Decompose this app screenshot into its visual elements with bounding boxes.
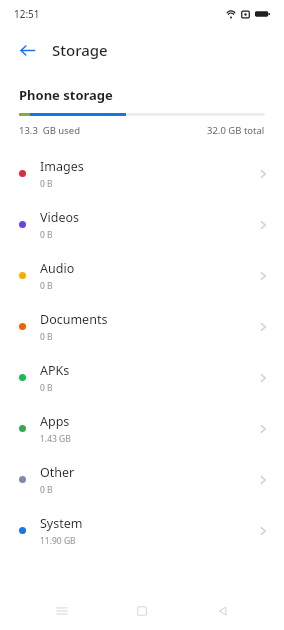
- staticText: 32.0 GB total: [207, 124, 265, 137]
- button[interactable]: Apps: [0, 403, 284, 454]
- staticText: Storage: [52, 40, 108, 60]
- staticText: 0 B: [40, 331, 53, 343]
- staticText: Documents: [40, 311, 108, 328]
- staticText: 0 B: [40, 229, 53, 241]
- staticText: 0 B: [40, 178, 53, 190]
- staticText: System: [40, 515, 83, 532]
- button[interactable]: APKs: [0, 352, 284, 403]
- button[interactable]: Recents: [43, 592, 81, 630]
- staticText: 11.90 GB: [40, 535, 76, 547]
- button[interactable]: Images: [0, 148, 284, 199]
- button[interactable]: Back: [204, 592, 242, 630]
- button[interactable]: Videos: [0, 199, 284, 250]
- staticText: Other: [40, 464, 75, 481]
- staticText: APKs: [40, 362, 70, 379]
- button[interactable]: Home: [123, 592, 161, 630]
- staticText: 0 B: [40, 280, 53, 292]
- staticText: Apps: [40, 413, 70, 430]
- staticText: Audio: [40, 260, 75, 277]
- staticText: 12:51: [14, 7, 40, 21]
- staticText: Phone storage: [19, 86, 113, 104]
- staticText: 1.43 GB: [40, 433, 71, 445]
- button[interactable]: Back: [14, 37, 40, 63]
- staticText: 0 B: [40, 382, 53, 394]
- staticText: 0 B: [40, 484, 53, 496]
- staticText: 13.3 GB used: [19, 124, 80, 137]
- button[interactable]: Audio: [0, 250, 284, 301]
- staticText: Images: [40, 158, 84, 175]
- staticText: Videos: [40, 209, 80, 226]
- button[interactable]: System: [0, 505, 284, 556]
- button[interactable]: Documents: [0, 301, 284, 352]
- button[interactable]: Phone storage: [19, 86, 113, 104]
- button[interactable]: Other: [0, 454, 284, 505]
